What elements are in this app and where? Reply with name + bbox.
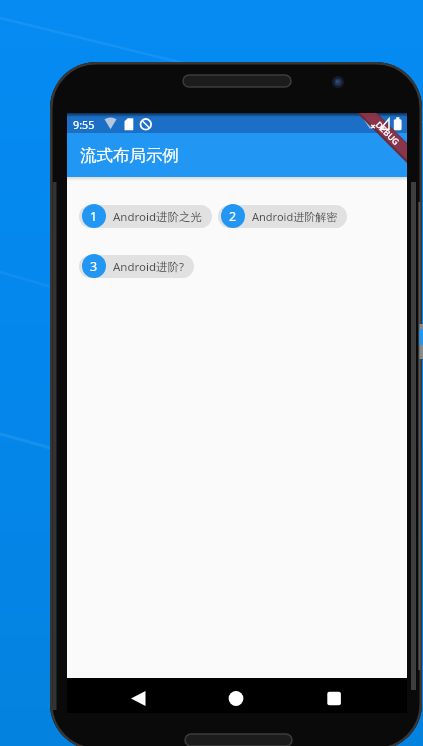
button[interactable] — [67, 678, 181, 713]
button[interactable] — [181, 678, 294, 713]
staticText: 2 — [229, 208, 237, 225]
staticText: DEBUG — [373, 119, 402, 148]
staticText: 流式布局示例 — [80, 145, 179, 166]
button[interactable]: Android进阶之光 — [79, 204, 212, 228]
staticText: Android进阶解密 — [252, 209, 338, 224]
staticText: Android进阶之光 — [113, 209, 203, 225]
staticText: Android进阶? — [113, 259, 185, 275]
button[interactable]: Android进阶? — [79, 254, 194, 278]
staticText: 9:55 — [73, 117, 95, 132]
staticText: 3 — [90, 258, 98, 275]
button[interactable] — [294, 678, 407, 713]
button[interactable]: Android进阶解密 — [218, 204, 347, 228]
staticText: 1 — [90, 208, 98, 225]
